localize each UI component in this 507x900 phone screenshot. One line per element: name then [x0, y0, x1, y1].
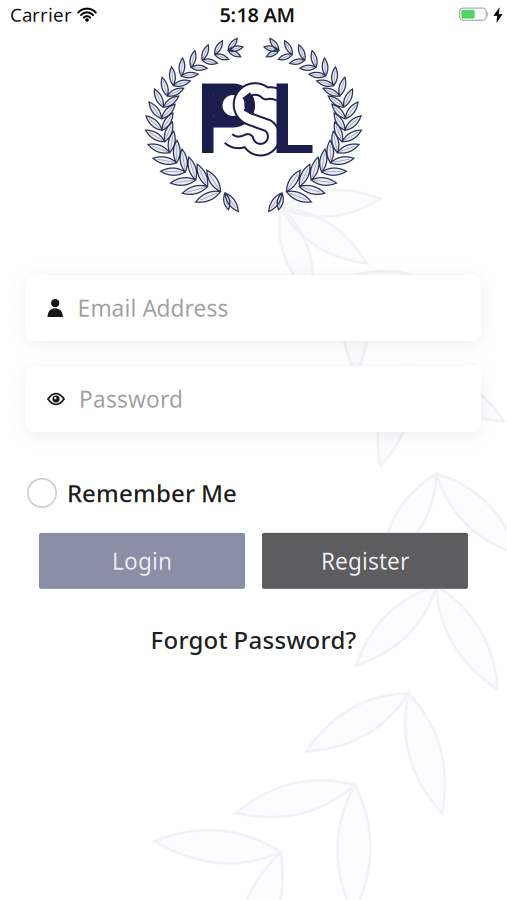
button[interactable]: Register: [262, 533, 468, 589]
staticText: Remember Me: [67, 477, 237, 509]
staticText: Password: [79, 384, 183, 414]
staticText: 5:18 AM: [219, 1, 295, 28]
staticText: Login: [112, 546, 172, 576]
staticText: Forgot Password?: [150, 624, 356, 656]
button[interactable]: Password: [26, 366, 481, 432]
staticText: Carrier: [10, 2, 72, 27]
button[interactable]: Forgot Password?: [150, 624, 356, 656]
button[interactable]: Remember Me: [0, 477, 507, 509]
staticText: Email Address: [77, 293, 228, 323]
button[interactable]: Email Address: [26, 275, 481, 341]
staticText: Register: [321, 546, 409, 576]
button[interactable]: Login: [39, 533, 245, 589]
